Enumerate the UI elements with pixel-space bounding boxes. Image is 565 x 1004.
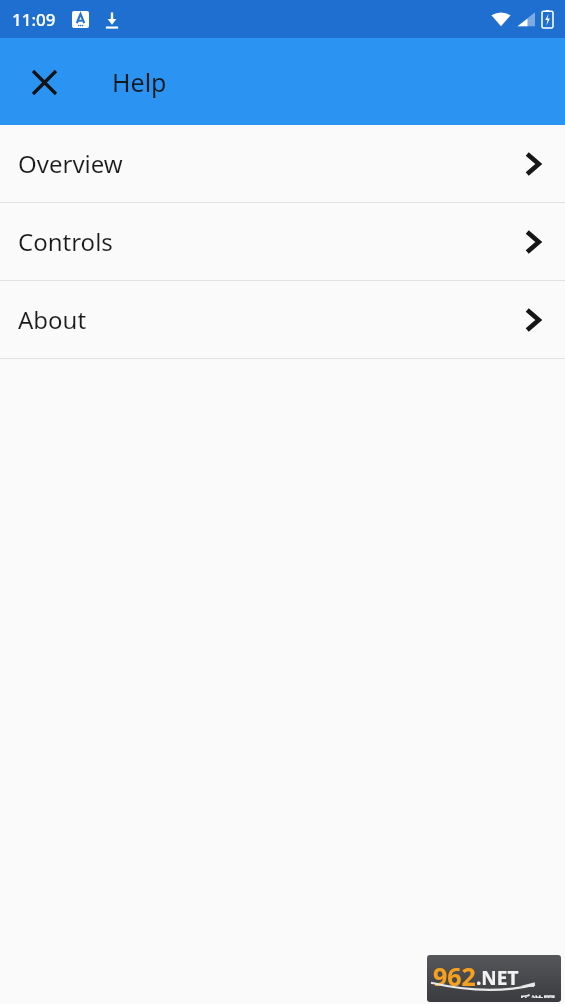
button[interactable]: Close (20, 58, 68, 106)
staticText: 962 (433, 959, 476, 993)
staticText: Controls (18, 225, 113, 258)
staticText: 11:09 (12, 8, 56, 31)
button[interactable]: About (0, 281, 565, 358)
staticText: Help (112, 65, 167, 99)
button[interactable]: Overview (0, 125, 565, 202)
staticText: .NET (476, 965, 519, 991)
staticText: About (18, 303, 87, 336)
staticText: Overview (18, 147, 123, 180)
staticText: 乐游网 (519, 993, 555, 998)
button[interactable]: Controls (0, 203, 565, 280)
